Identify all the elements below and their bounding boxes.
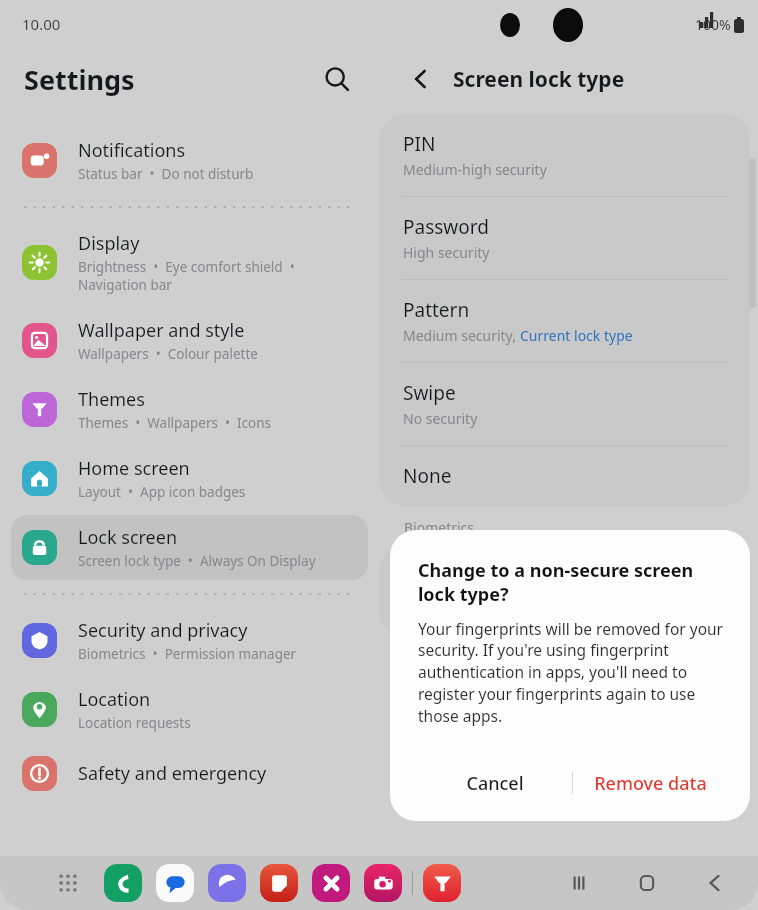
button[interactable]: Back [401,59,441,99]
button[interactable]: Internet [208,864,246,902]
button[interactable]: Cancel [418,763,572,803]
button[interactable]: PIN [379,114,750,196]
staticText: Brightness • Eye comfort shield • [78,258,295,276]
button[interactable]: Back [694,862,736,904]
button[interactable]: Lock screen [11,515,368,580]
button[interactable]: Password [379,197,750,279]
staticText: Safety and emergency [78,761,267,786]
staticText: Display [78,231,140,256]
staticText: Settings [24,61,135,98]
button[interactable]: Gallery [312,864,350,902]
button[interactable]: Home [626,862,668,904]
staticText: Swipe [403,380,456,406]
staticText: Navigation bar [78,276,172,294]
button[interactable]: Apps [48,863,88,903]
staticText: Remove data [594,771,707,796]
button[interactable]: Home screen [11,446,368,511]
staticText: Pattern [403,297,470,323]
button[interactable]: Location [11,677,368,742]
staticText: Biometrics [404,518,475,537]
staticText: Biometrics • Permission manager [78,645,297,663]
staticText: 10.00 [22,14,61,34]
staticText: Location [78,687,151,712]
staticText: Medium-high security [403,160,547,179]
staticText: Medium security, [403,326,520,345]
button[interactable] [682,563,728,588]
staticText: Status bar • Do not disturb [78,165,254,183]
staticText: Location requests [78,714,191,732]
staticText: High security [403,243,490,262]
staticText: Screen lock type • Always On Display [78,552,316,570]
button[interactable]: Swipe [379,363,750,445]
staticText: Layout • App icon badges [78,483,246,501]
button[interactable]: Messages [156,864,194,902]
staticText: Wallpaper and style [78,318,245,343]
staticText: Wallpapers • Colour palette [78,345,258,363]
button[interactable]: Themes [423,864,461,902]
button[interactable]: Display [11,221,368,304]
button[interactable]: Notes [260,864,298,902]
button[interactable]: Notifications [11,128,368,193]
button[interactable]: Security and privacy [11,608,368,673]
staticText: Screen lock type [453,65,625,94]
staticText: Themes • Wallpapers • Icons [78,414,272,432]
button[interactable]: None [379,446,750,506]
button[interactable]: Pattern [379,280,750,362]
staticText: Notifications [78,138,186,163]
staticText: No security [403,409,478,428]
staticText: Security and privacy [78,618,248,643]
staticText: Current lock type [520,326,633,345]
staticText: Password [403,214,489,240]
staticText: Change to a non-secure screen lock type? [418,558,728,606]
button[interactable]: Search [315,57,359,101]
staticText: Face [404,563,443,588]
staticText: Lock screen [78,525,178,550]
staticText: PIN [403,131,436,157]
button[interactable]: Phone [104,864,142,902]
staticText: Cancel [466,771,524,796]
button[interactable]: Recents [558,862,600,904]
button[interactable]: Camera [364,864,402,902]
staticText: None [403,463,452,489]
staticText: Themes [78,387,145,412]
button[interactable]: Wallpaper and style [11,308,368,373]
button[interactable]: Safety and emergency [11,746,368,801]
button[interactable]: Remove data [573,763,728,803]
staticText: Home screen [78,456,190,481]
button[interactable]: Themes [11,377,368,442]
staticText: 100% [695,15,731,34]
staticText: Your fingerprints will be removed for yo… [418,618,728,727]
